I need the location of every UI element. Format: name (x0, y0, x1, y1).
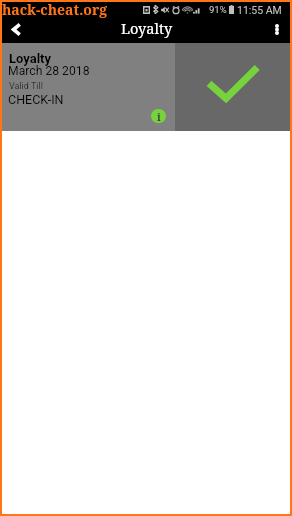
staticText: hack-cheat.org (2, 0, 108, 19)
staticText: CHECK-IN (8, 92, 64, 107)
staticText: 11:55 AM (237, 4, 282, 15)
staticText: 91% (209, 4, 227, 15)
button[interactable]: Loyalty (2, 43, 290, 131)
staticText: Valid Till (9, 81, 43, 92)
staticText: Loyalty (121, 18, 173, 38)
staticText: i (157, 109, 161, 123)
button[interactable]: More options (266, 17, 290, 43)
staticText: March 28 2018 (8, 64, 90, 78)
button[interactable]: Info (151, 109, 166, 123)
button[interactable]: Back (2, 17, 31, 43)
staticText: Loyalty (9, 51, 52, 66)
